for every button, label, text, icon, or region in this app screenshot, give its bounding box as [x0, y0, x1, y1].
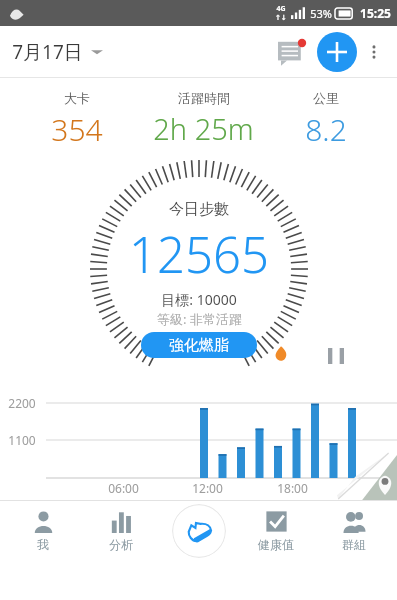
staticText: 2h 25m [153, 109, 254, 148]
button[interactable]: 強化燃脂 [141, 332, 257, 358]
staticText: 我 [37, 537, 49, 552]
button[interactable]: 7月17日 [12, 39, 103, 65]
staticText: 8.2 [305, 109, 347, 150]
staticText: 18:00 [277, 480, 308, 496]
button[interactable]: Pause [320, 340, 352, 372]
staticText: 7月17日 [12, 39, 83, 65]
staticText: 群組 [342, 537, 366, 552]
staticText: 強化燃脂 [169, 336, 229, 355]
staticText: 健康值 [258, 537, 294, 552]
staticText: 12565 [129, 221, 269, 288]
staticText: 1100 [8, 432, 36, 448]
button[interactable]: Messages [271, 30, 315, 74]
staticText: 2200 [8, 395, 36, 411]
staticText: 53% [310, 6, 332, 21]
button[interactable]: More options [357, 35, 391, 69]
staticText: 目標: 10000 [161, 290, 237, 309]
staticText: 354 [51, 109, 103, 150]
staticText: 06:00 [108, 480, 139, 496]
button[interactable]: 我 [8, 510, 78, 552]
staticText: 今日步數 [169, 200, 229, 219]
button[interactable]: 分析 [86, 510, 156, 552]
staticText: 活躍時間 [178, 90, 230, 106]
button[interactable]: Map [337, 452, 397, 500]
button[interactable]: Add [317, 32, 357, 72]
staticText: ↑↓ [275, 14, 287, 22]
button[interactable]: 群組 [319, 510, 389, 552]
staticText: 12:00 [192, 480, 223, 496]
button[interactable]: Steps [164, 500, 234, 562]
staticText: 15:25 [360, 5, 391, 21]
staticText: 等級: 非常活躍 [157, 310, 242, 328]
staticText: 大卡 [64, 90, 90, 106]
button[interactable]: 健康值 [241, 510, 311, 552]
staticText: 公里 [313, 90, 339, 106]
staticText: 4G [276, 4, 286, 14]
staticText: 分析 [109, 537, 133, 552]
